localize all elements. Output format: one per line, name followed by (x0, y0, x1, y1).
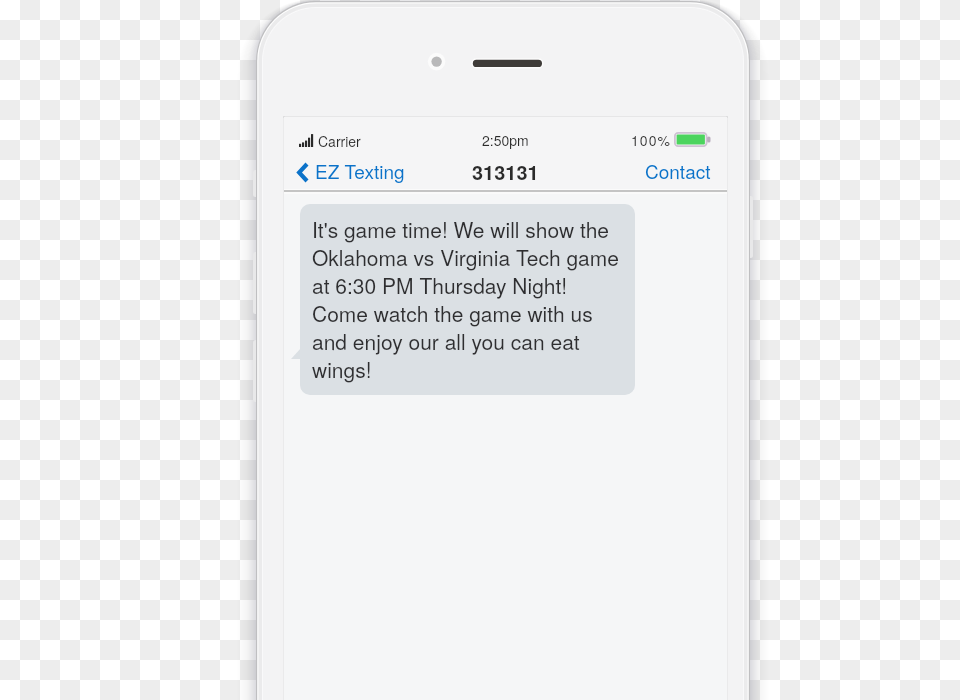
other: Signal strength (299, 134, 314, 147)
staticText: 313131 (472, 157, 539, 184)
button[interactable]: Contact (645, 157, 711, 184)
staticText: Contact (645, 157, 711, 184)
staticText: 100% (631, 130, 671, 150)
staticText: It's game time! We will show the Oklahom… (312, 216, 619, 384)
button[interactable]: Back to EZ Texting (297, 157, 405, 184)
staticText: 2:50pm (482, 130, 529, 150)
other: Battery full (674, 132, 711, 147)
button[interactable]: It's game time! We will show the Oklahom… (312, 216, 623, 384)
staticText: EZ Texting (315, 157, 405, 184)
staticText: Carrier (318, 131, 361, 151)
other: Back to EZ Texting (297, 162, 309, 183)
